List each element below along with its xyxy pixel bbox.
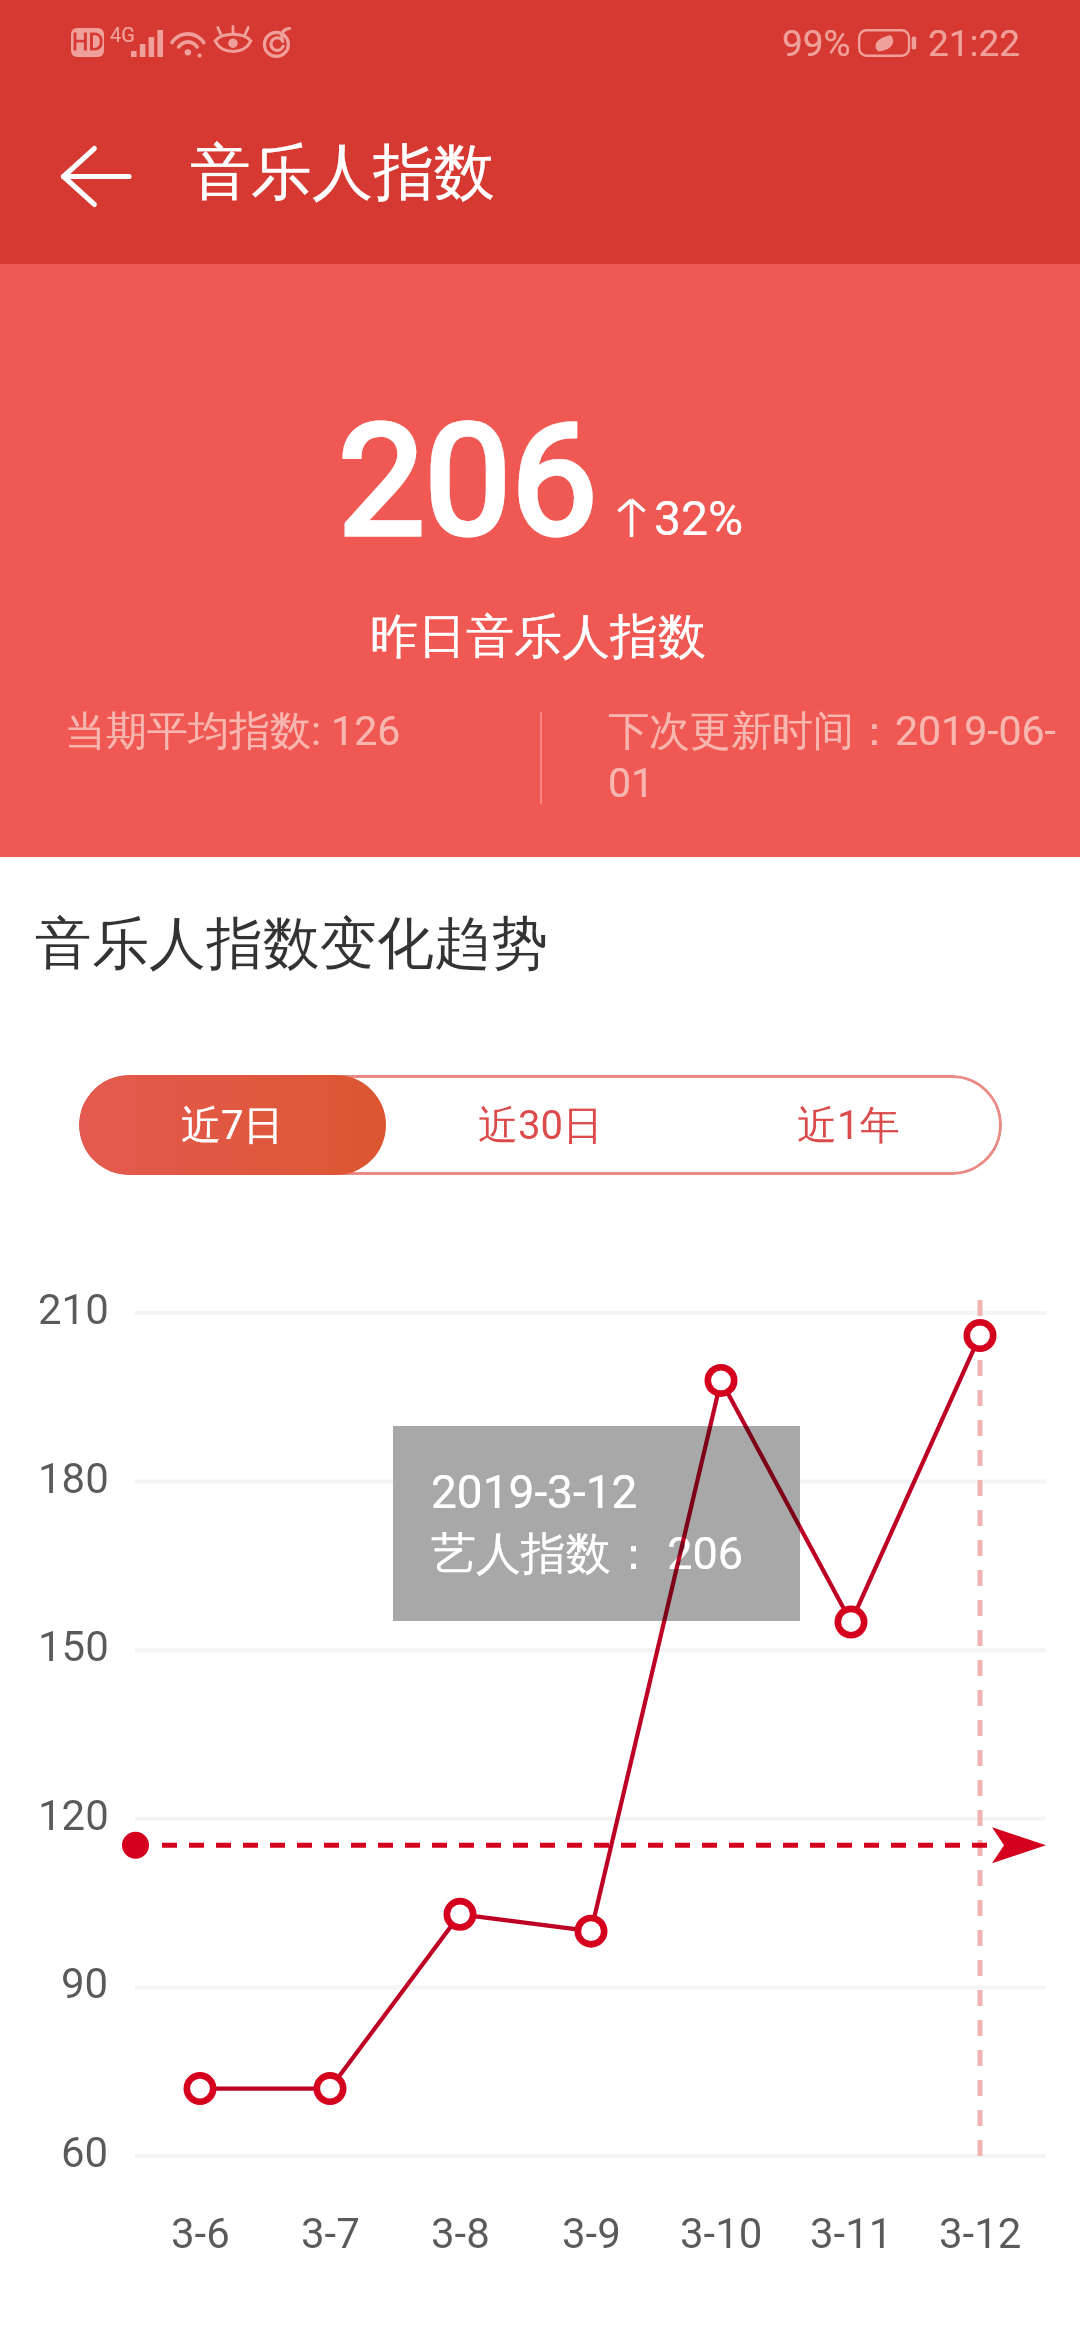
- staticText: 近7日: [181, 1100, 284, 1150]
- staticText: 180: [38, 1454, 109, 1503]
- staticText: 3-6: [171, 2209, 230, 2258]
- staticText: 3-12: [939, 2209, 1022, 2258]
- staticText: 4G: [110, 23, 135, 46]
- button[interactable]: 近30日: [386, 1075, 694, 1175]
- staticText: 近30日: [478, 1100, 603, 1150]
- staticText: 2019-3-12: [431, 1465, 638, 1519]
- button[interactable]: 近1年: [694, 1075, 1002, 1175]
- staticText: 99%: [782, 22, 851, 65]
- staticText: 3-8: [431, 2209, 490, 2258]
- staticText: 音乐人指数变化趋势: [35, 908, 548, 980]
- staticText: 150: [38, 1622, 109, 1671]
- staticText: 3-10: [680, 2209, 763, 2258]
- button[interactable]: Back: [27, 109, 163, 245]
- staticText: 21:22: [928, 22, 1021, 65]
- staticText: 206: [338, 391, 598, 571]
- staticText: 3-11: [810, 2209, 893, 2258]
- staticText: 昨日音乐人指数: [370, 607, 706, 667]
- staticText: 下次更新时间：2019-06- 01: [608, 706, 1056, 807]
- staticText: 60: [61, 2128, 109, 2177]
- button[interactable]: 近7日: [79, 1075, 386, 1175]
- staticText: 艺人指数： 206: [431, 1526, 744, 1583]
- staticText: 210: [38, 1285, 109, 1334]
- staticText: 120: [38, 1791, 109, 1840]
- staticText: 90: [61, 1959, 109, 2008]
- staticText: 3-7: [301, 2209, 360, 2258]
- staticText: 3-9: [562, 2209, 621, 2258]
- staticText: HD: [72, 29, 104, 56]
- staticText: 近1年: [797, 1100, 900, 1150]
- staticText: 32%: [654, 490, 744, 546]
- staticText: 音乐人指数: [190, 134, 495, 211]
- staticText: 当期平均指数: 126: [65, 706, 401, 758]
